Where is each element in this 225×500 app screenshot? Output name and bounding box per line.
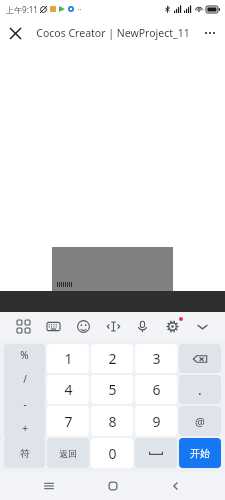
- button[interactable]: .: [179, 375, 221, 404]
- button[interactable]: Move cursor: [103, 316, 123, 336]
- staticText: @: [195, 414, 205, 429]
- button[interactable]: Home: [99, 472, 127, 500]
- button[interactable]: Settings: [162, 316, 182, 336]
- button[interactable]: Apps: [13, 316, 33, 336]
- staticText: -: [23, 397, 27, 411]
- staticText: 上午9:11: [6, 4, 38, 15]
- button[interactable]: Recent apps: [35, 472, 63, 500]
- staticText: Cocos Creator | NewProject_11: [36, 26, 190, 40]
- button[interactable]: 符: [4, 438, 45, 468]
- staticText: 6: [152, 380, 161, 399]
- staticText: 2: [108, 349, 117, 368]
- staticText: 返回: [59, 448, 77, 459]
- button[interactable]: 9: [135, 406, 177, 436]
- button[interactable]: Backspace: [179, 344, 221, 373]
- button[interactable]: Emoji: [73, 316, 93, 336]
- button[interactable]: 4: [47, 375, 89, 404]
- staticText: 7: [64, 412, 73, 431]
- staticText: /: [23, 372, 27, 386]
- button[interactable]: Hide keyboard: [192, 316, 212, 336]
- staticText: 5: [108, 380, 117, 399]
- staticText: 4: [64, 380, 73, 399]
- staticText: 9: [152, 412, 161, 431]
- button[interactable]: Keyboard layout: [43, 316, 63, 336]
- button[interactable]: 6: [135, 375, 177, 404]
- button[interactable]: 0: [91, 438, 133, 468]
- button[interactable]: 5: [91, 375, 133, 404]
- staticText: 3: [152, 349, 161, 368]
- button[interactable]: 开始: [179, 438, 221, 468]
- staticText: %: [20, 348, 29, 362]
- staticText: 0: [108, 444, 117, 463]
- button[interactable]: 1: [47, 344, 89, 373]
- staticText: 开始: [190, 447, 210, 460]
- staticText: +: [22, 421, 28, 435]
- button[interactable]: @: [179, 406, 221, 436]
- button[interactable]: 7: [47, 406, 89, 436]
- button[interactable]: 3: [135, 344, 177, 373]
- staticText: .: [198, 380, 202, 399]
- staticText: 符: [20, 447, 30, 460]
- button[interactable]: 返回: [47, 438, 89, 468]
- button[interactable]: 2: [91, 344, 133, 373]
- staticText: 8: [108, 412, 117, 431]
- button[interactable]: Space: [135, 438, 177, 468]
- button[interactable]: More options: [195, 18, 225, 48]
- button[interactable]: 8: [91, 406, 133, 436]
- button[interactable]: Close: [0, 18, 30, 48]
- button[interactable]: Back: [162, 472, 190, 500]
- button[interactable]: Voice input: [132, 316, 152, 336]
- staticText: ··: [77, 4, 82, 15]
- staticText: 1: [64, 349, 73, 368]
- button[interactable]: %: [4, 344, 45, 439]
